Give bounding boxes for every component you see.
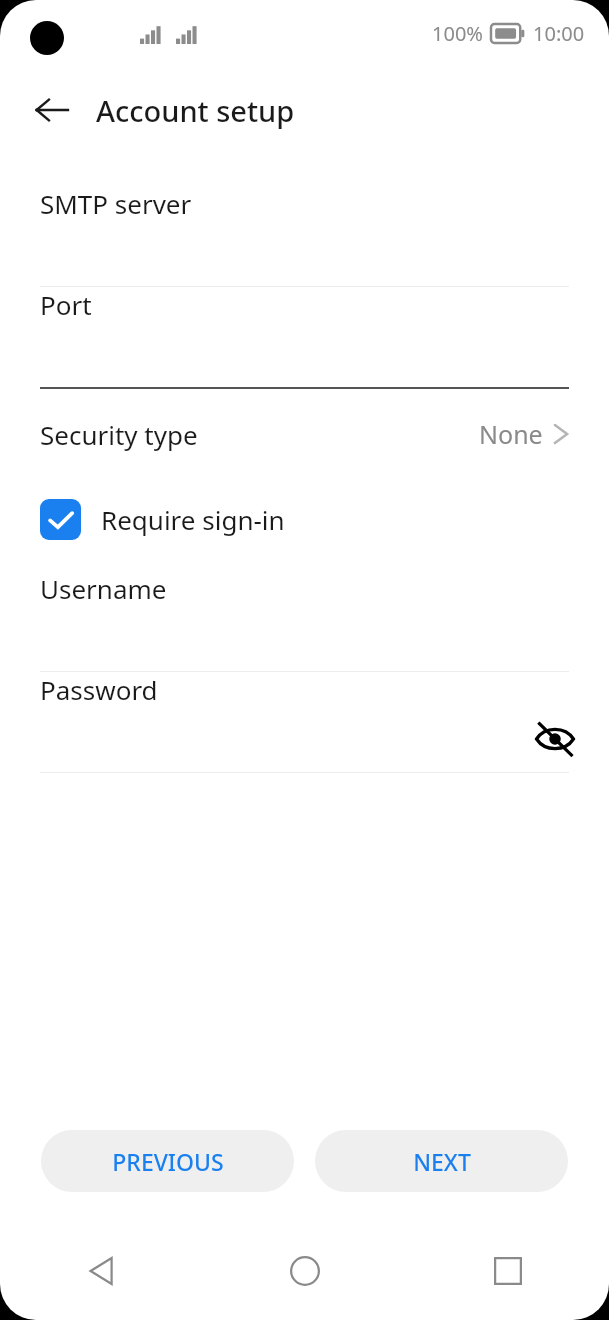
button[interactable]: Port — [0, 287, 609, 389]
staticText: 10:00 — [533, 20, 585, 47]
button[interactable]: Back — [0, 1236, 203, 1306]
staticText: 100% — [432, 20, 483, 47]
staticText: Require sign-in — [101, 502, 285, 537]
button[interactable]: PREVIOUS — [41, 1130, 294, 1192]
staticText: SMTP server — [40, 186, 192, 221]
staticText: Account setup — [96, 91, 295, 130]
button[interactable]: Username — [0, 571, 609, 672]
staticText: Port — [40, 287, 92, 322]
button[interactable]: NEXT — [315, 1130, 568, 1192]
button[interactable]: Show password — [527, 711, 583, 767]
button[interactable]: Security type — [0, 405, 609, 463]
button[interactable]: SMTP server — [0, 186, 609, 287]
button[interactable]: Require sign-in — [0, 489, 609, 549]
staticText: Username — [40, 571, 167, 606]
button[interactable]: Home — [203, 1236, 406, 1306]
staticText: PREVIOUS — [112, 1146, 224, 1177]
staticText: Password — [40, 672, 158, 707]
staticText: None — [479, 417, 543, 451]
button[interactable]: Back — [26, 84, 78, 136]
button[interactable]: Recents — [406, 1236, 609, 1306]
staticText: NEXT — [413, 1146, 471, 1177]
staticText: Security type — [40, 417, 198, 452]
button[interactable]: Password — [0, 672, 609, 773]
